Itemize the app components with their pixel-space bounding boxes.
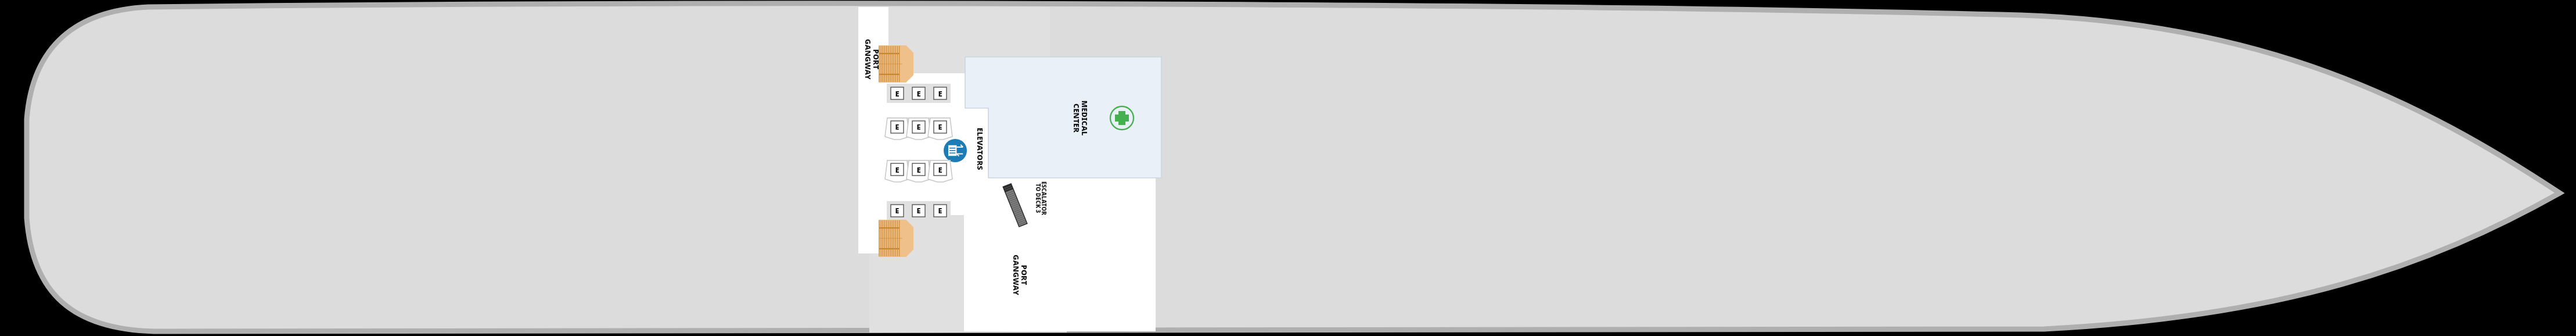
button[interactable]: Ship deck plan [0, 0, 2576, 336]
